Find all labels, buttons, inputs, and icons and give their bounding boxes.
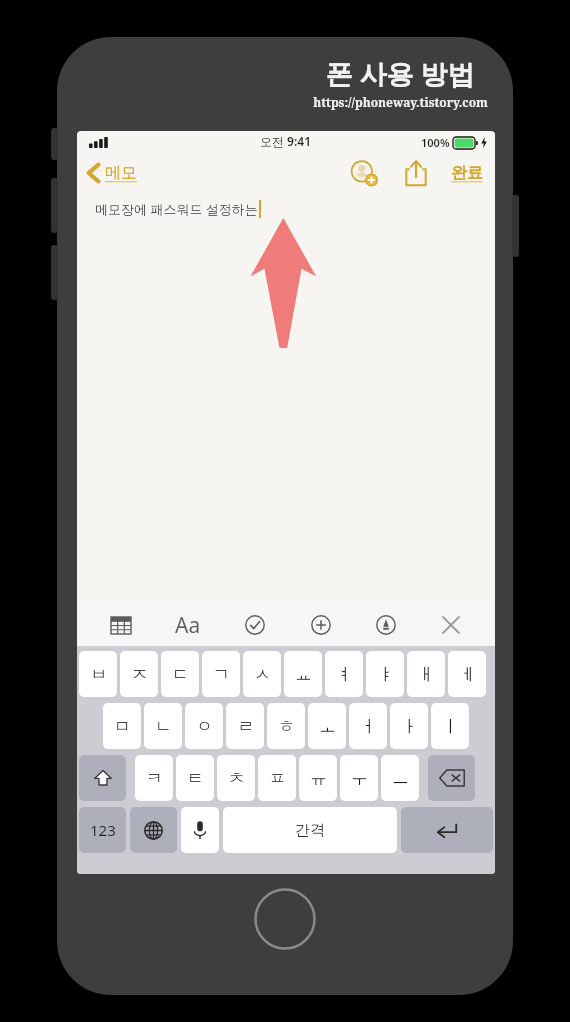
button[interactable]: 123 xyxy=(79,807,126,853)
button[interactable]: Close keyboard xyxy=(433,607,469,643)
button[interactable]: ㅓ xyxy=(349,703,387,749)
button[interactable]: Silent switch xyxy=(51,128,58,160)
button[interactable]: ㅣ xyxy=(431,703,469,749)
button[interactable]: ㅇ xyxy=(185,703,223,749)
button[interactable]: ㅛ xyxy=(284,651,322,697)
button[interactable]: Checklist xyxy=(237,607,273,643)
staticText: ㅇ xyxy=(196,716,213,737)
staticText: ㅏ xyxy=(401,716,418,737)
staticText: ㅓ xyxy=(360,716,377,737)
staticText: ㅂ xyxy=(90,664,107,685)
staticText: ㅌ xyxy=(187,768,204,789)
button[interactable]: Aa xyxy=(168,605,208,645)
staticText: Aa xyxy=(175,611,201,640)
staticText: ㅑ xyxy=(377,664,394,685)
staticText: ㅎ xyxy=(278,716,295,737)
button[interactable]: ㅐ xyxy=(407,651,445,697)
button[interactable]: ㅌ xyxy=(176,755,214,801)
button[interactable]: 메모 xyxy=(87,162,137,184)
button[interactable]: Dictate xyxy=(181,807,219,853)
staticText: 간격 xyxy=(295,821,325,840)
staticText: ㅜ xyxy=(351,768,368,789)
button[interactable]: Shift xyxy=(79,755,126,801)
staticText: ㅐ xyxy=(418,664,435,685)
button[interactable]: ㅅ xyxy=(243,651,281,697)
button[interactable]: Volume down xyxy=(51,245,58,300)
button[interactable]: ㅈ xyxy=(120,651,158,697)
staticText: ㄹ xyxy=(237,716,254,737)
button[interactable]: ㅗ xyxy=(308,703,346,749)
staticText: ㅋ xyxy=(146,768,163,789)
button[interactable]: 완료 xyxy=(451,163,483,183)
staticText: ㅣ xyxy=(442,716,459,737)
button[interactable]: ㅁ xyxy=(103,703,141,749)
button[interactable]: Home xyxy=(254,888,316,950)
button[interactable]: ㅊ xyxy=(217,755,255,801)
button[interactable]: ㅎ xyxy=(267,703,305,749)
staticText: 완료 xyxy=(451,163,483,183)
button[interactable]: ㄹ xyxy=(226,703,264,749)
button[interactable]: ㅑ xyxy=(366,651,404,697)
staticText: ㅍ xyxy=(269,768,286,789)
button[interactable]: Backspace xyxy=(428,755,475,801)
button[interactable]: Markup xyxy=(368,607,404,643)
staticText: ㄴ xyxy=(155,716,172,737)
staticText: 오전 9:41 xyxy=(260,133,312,149)
button[interactable]: Volume up xyxy=(51,178,58,233)
button[interactable]: ㅋ xyxy=(135,755,173,801)
button[interactable]: ㄴ xyxy=(144,703,182,749)
button[interactable]: ㅔ xyxy=(448,651,486,697)
button[interactable]: Change keyboard xyxy=(130,807,177,853)
staticText: ㅗ xyxy=(319,716,336,737)
staticText: 123 xyxy=(90,820,116,840)
button[interactable]: ㅡ xyxy=(381,755,419,801)
button[interactable]: ㅂ xyxy=(79,651,117,697)
staticText: ㅊ xyxy=(228,768,245,789)
staticText: 메모장에 패스워드 설정하는 xyxy=(95,200,258,218)
staticText: ㅕ xyxy=(336,664,353,685)
staticText: ㅛ xyxy=(295,664,312,685)
button[interactable]: Share xyxy=(399,156,433,190)
staticText: ㄱ xyxy=(213,664,230,685)
staticText: ㅠ xyxy=(310,768,327,789)
button[interactable]: ㅕ xyxy=(325,651,363,697)
button[interactable]: Return xyxy=(401,807,493,853)
button[interactable]: ㅏ xyxy=(390,703,428,749)
button[interactable]: ㅜ xyxy=(340,755,378,801)
staticText: 폰 사용 방법 xyxy=(325,55,475,92)
button[interactable]: ㅠ xyxy=(299,755,337,801)
button[interactable]: Table xyxy=(103,607,139,643)
staticText: ㅡ xyxy=(392,768,409,789)
button[interactable]: Add People xyxy=(347,156,381,190)
staticText: 100% xyxy=(421,135,450,150)
button[interactable]: ㄷ xyxy=(161,651,199,697)
button[interactable]: ㅍ xyxy=(258,755,296,801)
staticText: ㅈ xyxy=(131,664,148,685)
staticText: ㅔ xyxy=(459,664,476,685)
button[interactable]: Power xyxy=(512,195,519,257)
staticText: ㅅ xyxy=(254,664,271,685)
button[interactable]: ㄱ xyxy=(202,651,240,697)
staticText: 메모 xyxy=(105,163,137,183)
staticText: ㄷ xyxy=(172,664,189,685)
button[interactable]: 간격 xyxy=(223,807,397,853)
staticText: ㅁ xyxy=(114,716,131,737)
staticText: https://phoneway.tistory.com xyxy=(313,94,488,110)
button[interactable]: Add attachment xyxy=(303,607,339,643)
